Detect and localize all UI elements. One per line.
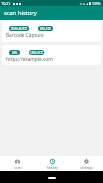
button[interactable]: history [35,156,69,171]
button[interactable]: RUN AUTO [2,21,101,42]
staticText: UNLOCK [30,51,43,55]
staticText: 10:21 [1,1,11,6]
button[interactable]: URL [2,45,101,65]
staticText: 100% [92,1,101,6]
button[interactable]: RUN AUTO [9,26,29,31]
staticText: DELETE [40,27,51,31]
staticText: settings [80,165,93,170]
staticText: Barcode Capture [6,32,44,39]
button[interactable]: URL [9,50,20,55]
staticText: URL [12,51,18,55]
button[interactable]: UNLOCK [29,50,44,55]
staticText: history [47,165,58,170]
button[interactable]: scan [0,156,35,171]
button[interactable]: DELETE [38,26,53,31]
staticText: scan [14,165,22,170]
staticText: scan history [4,9,37,17]
button[interactable]: settings [69,156,103,171]
staticText: RUN AUTO [11,27,27,31]
staticText: https://example.com [6,56,53,63]
